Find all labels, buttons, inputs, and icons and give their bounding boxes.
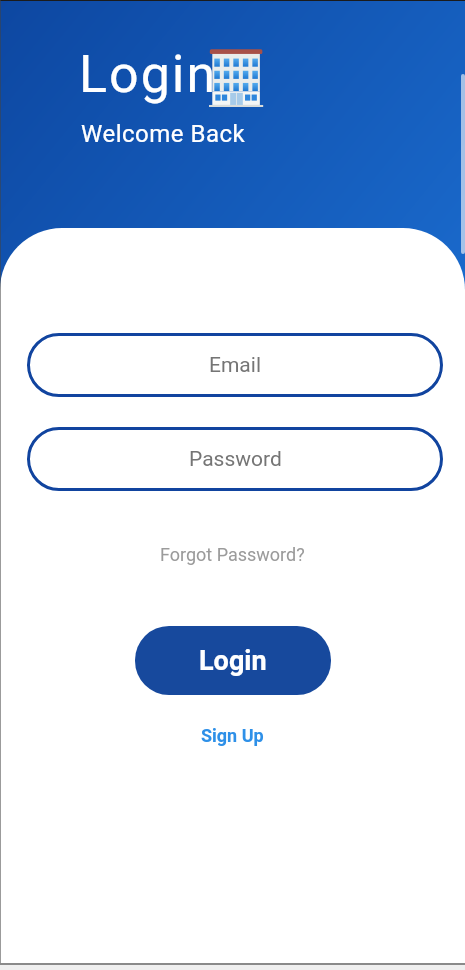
staticText: Password [189, 447, 282, 472]
staticText: Login [199, 645, 267, 677]
button[interactable]: Email [27, 333, 443, 397]
staticText: Email [209, 353, 261, 378]
button[interactable]: Forgot Password? [160, 544, 305, 565]
button[interactable]: Sign Up [201, 725, 264, 746]
button[interactable]: Password [27, 427, 443, 491]
button[interactable]: Login [135, 626, 331, 695]
staticText: Login [79, 44, 218, 105]
staticText: Welcome Back [81, 120, 246, 148]
